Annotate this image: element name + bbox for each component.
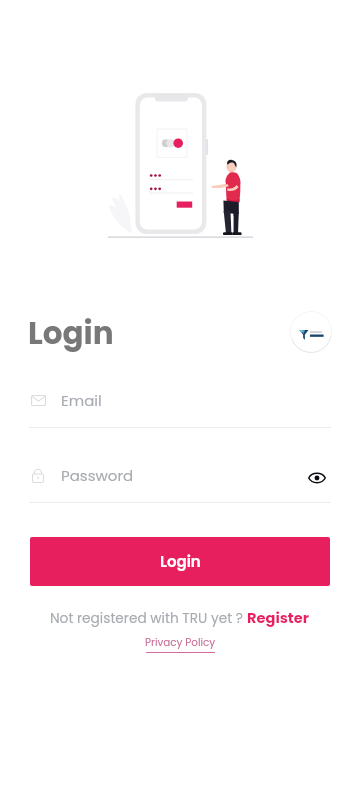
button[interactable]: SMART FUNNEL logo bbox=[290, 311, 332, 353]
staticText: Password bbox=[61, 465, 134, 486]
button[interactable]: Show password bbox=[304, 466, 330, 490]
staticText: Login bbox=[28, 311, 114, 354]
button[interactable]: Login bbox=[30, 537, 330, 586]
staticText: Privacy Policy bbox=[145, 635, 216, 650]
button[interactable]: Email bbox=[29, 388, 331, 428]
button[interactable]: Register bbox=[247, 608, 310, 628]
staticText: Register bbox=[247, 608, 310, 628]
button[interactable]: Privacy Policy bbox=[145, 635, 216, 653]
staticText: Login bbox=[160, 551, 201, 572]
staticText: Not registered with TRU yet ? bbox=[50, 609, 247, 628]
button[interactable]: Password bbox=[29, 463, 331, 503]
staticText: Email bbox=[61, 390, 102, 411]
